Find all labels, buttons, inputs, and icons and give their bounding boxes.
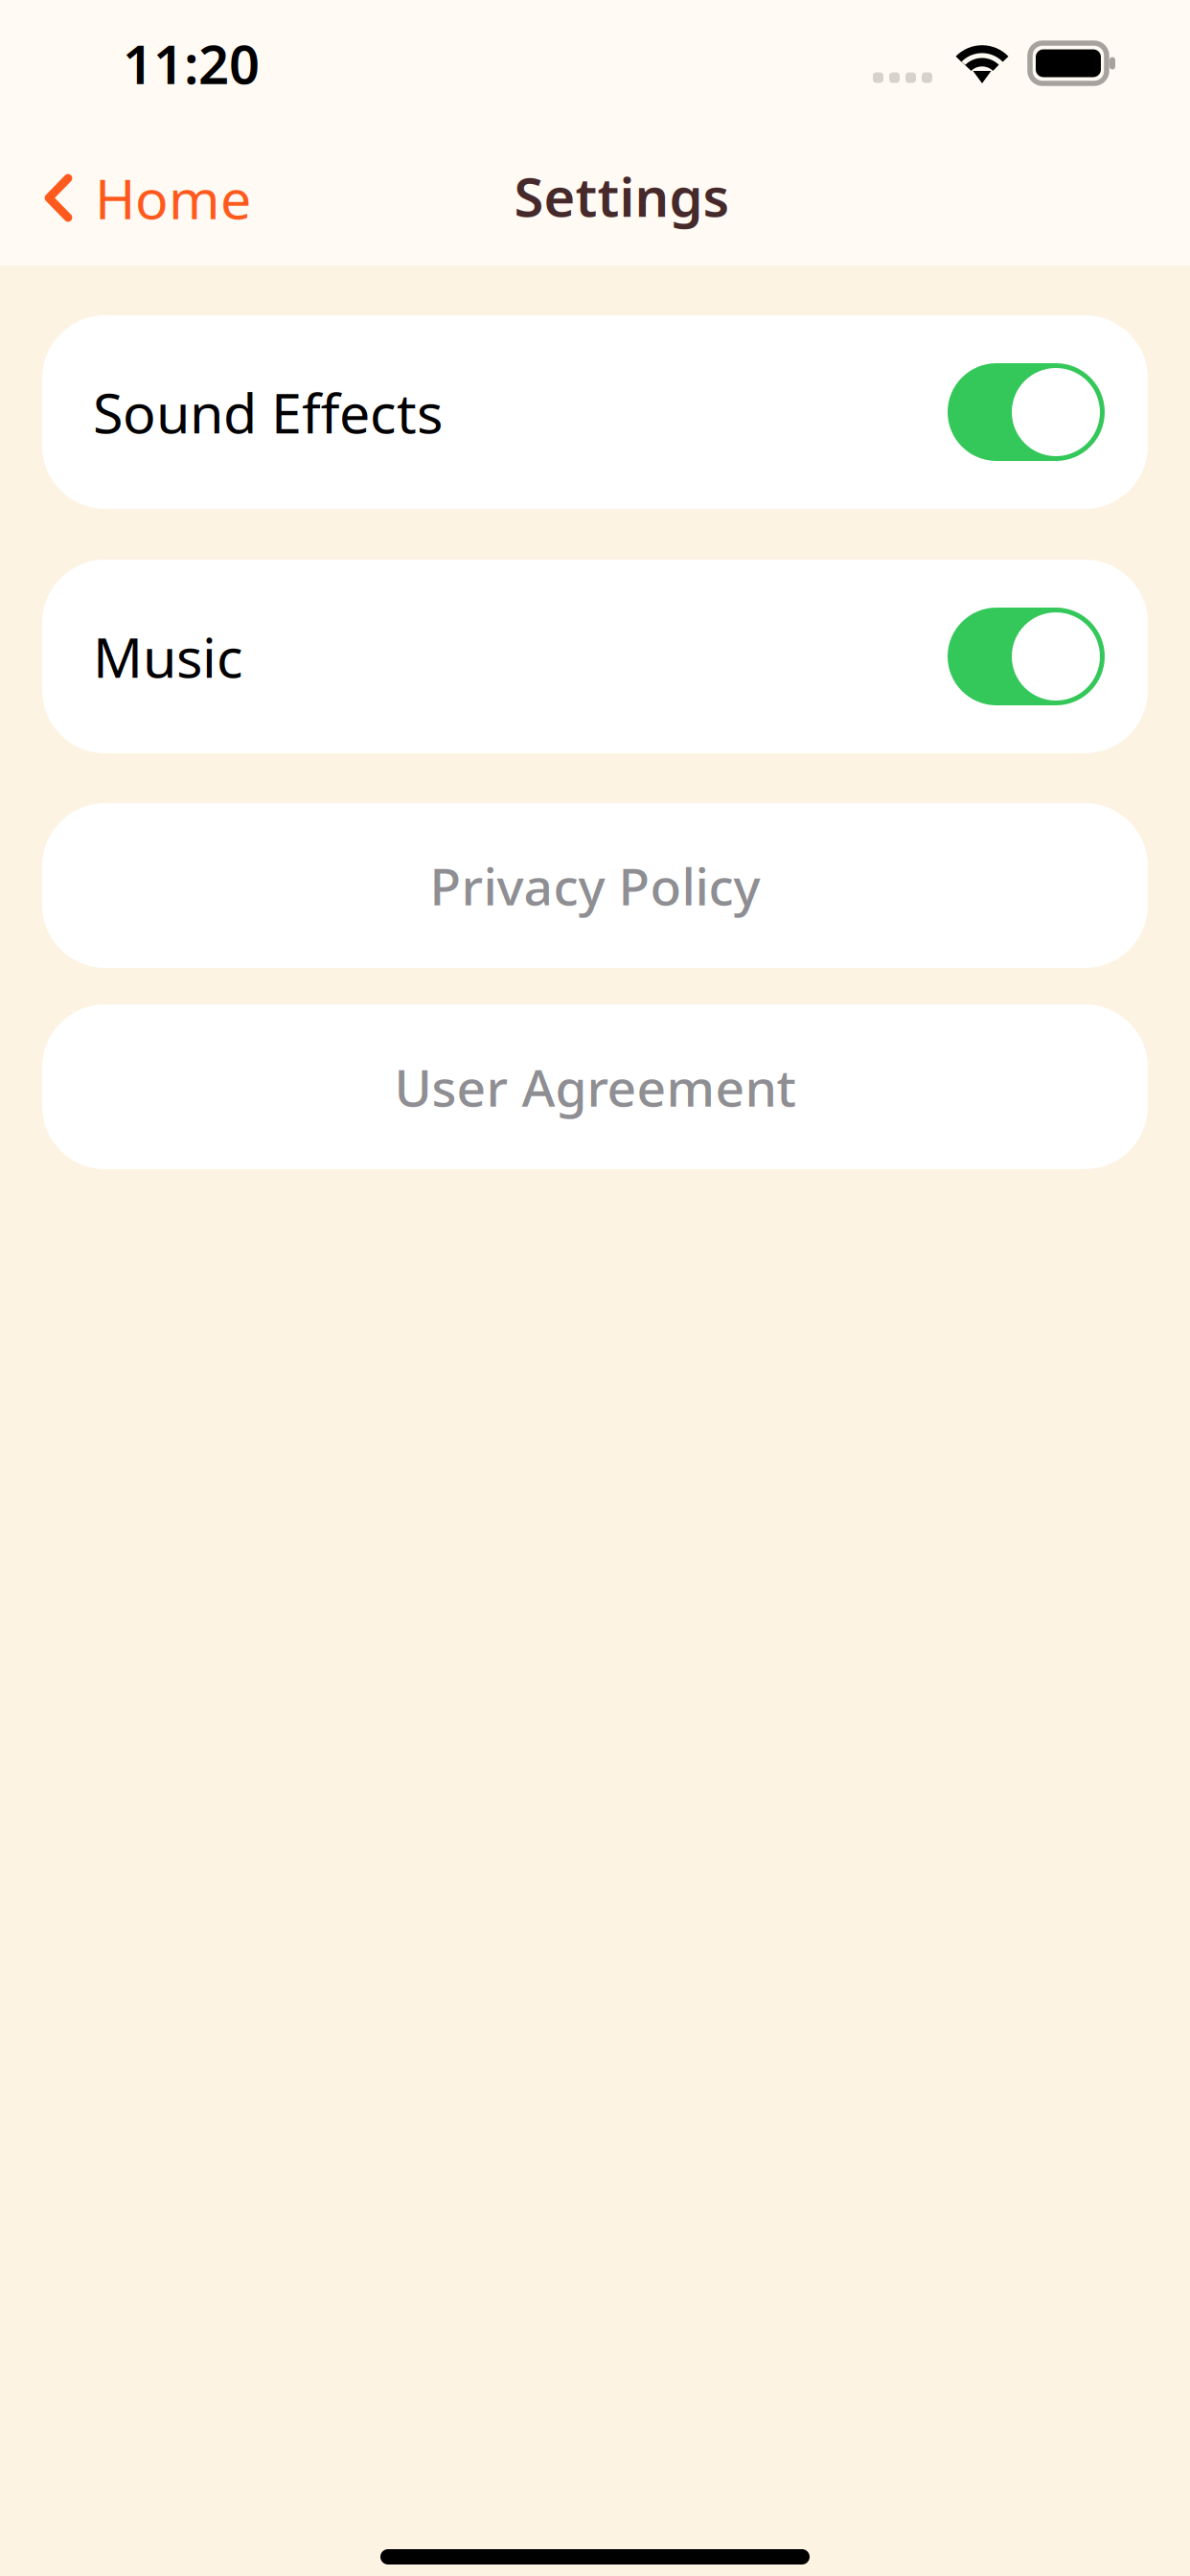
staticText: User Agreement [394, 1053, 796, 1121]
staticText: 11:20 [123, 28, 260, 99]
staticText: Sound Effects [93, 376, 443, 448]
staticText: Privacy Policy [430, 852, 760, 919]
staticText: Home [95, 161, 251, 234]
button[interactable]: Music [42, 560, 1148, 753]
staticText: Settings [514, 160, 730, 232]
button[interactable]: User Agreement [42, 1004, 1148, 1169]
staticText: Music [93, 620, 243, 693]
button[interactable]: Home [0, 138, 276, 253]
button[interactable]: Sound Effects [42, 315, 1148, 509]
button[interactable]: Privacy Policy [42, 803, 1148, 968]
